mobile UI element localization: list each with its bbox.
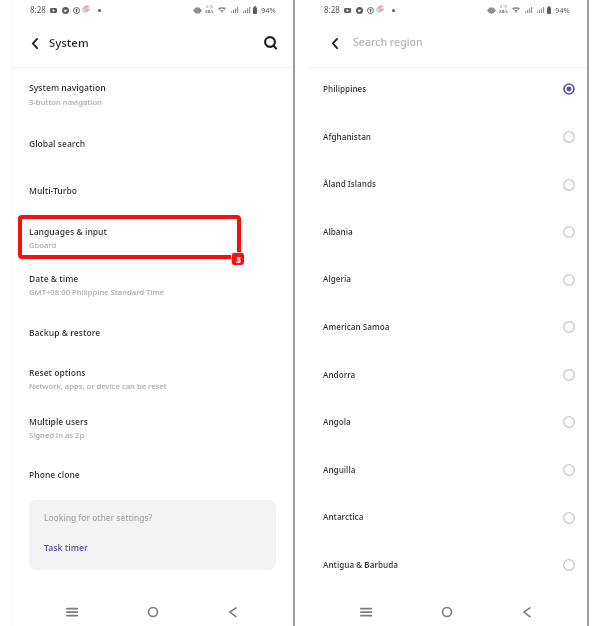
- button[interactable]: [12, 260, 293, 307]
- staticText: GMT+08:00 Philippine Standard Time: [29, 287, 165, 297]
- staticText: 3: [236, 254, 241, 265]
- button[interactable]: Task timer: [44, 542, 88, 554]
- button[interactable]: [12, 450, 293, 497]
- staticText: Signed in as 2p: [29, 430, 85, 440]
- staticText: Andorra: [323, 369, 356, 380]
- staticText: Algeria: [323, 273, 352, 284]
- staticText: KB/s: [499, 9, 508, 14]
- button[interactable]: [306, 249, 587, 297]
- button[interactable]: Home: [435, 600, 459, 624]
- staticText: Languages & input: [29, 226, 107, 238]
- button[interactable]: [306, 392, 587, 440]
- staticText: Anguilla: [323, 464, 356, 475]
- staticText: 8:28: [324, 4, 340, 15]
- button[interactable]: [306, 297, 587, 345]
- staticText: System: [49, 35, 89, 50]
- staticText: Angola: [323, 416, 351, 427]
- button[interactable]: [306, 535, 587, 583]
- staticText: Task timer: [44, 542, 88, 554]
- button[interactable]: [12, 71, 293, 118]
- staticText: Phone clone: [29, 469, 80, 481]
- button[interactable]: [306, 59, 587, 107]
- button[interactable]: Back: [29, 35, 41, 51]
- button[interactable]: [306, 202, 587, 250]
- staticText: Network, apps, or device can be reset: [29, 381, 167, 391]
- staticText: 94%: [555, 5, 570, 15]
- button[interactable]: [12, 355, 293, 402]
- staticText: Looking for other settings?: [44, 512, 153, 523]
- staticText: Global search: [29, 138, 86, 150]
- button[interactable]: [12, 118, 293, 165]
- staticText: Antarctica: [323, 511, 364, 522]
- button[interactable]: [12, 403, 293, 450]
- button[interactable]: Back: [329, 35, 341, 51]
- staticText: 94%: [261, 5, 276, 15]
- staticText: Backup & restore: [29, 327, 101, 339]
- staticText: 0.15: [500, 4, 507, 9]
- staticText: Åland Islands: [323, 178, 377, 189]
- staticText: Afghanistan: [323, 131, 372, 142]
- staticText: American Samoa: [323, 321, 390, 332]
- staticText: 3-button navigation: [29, 97, 102, 107]
- button[interactable]: Recent apps: [354, 600, 378, 624]
- staticText: Multi-Turbo: [29, 185, 78, 197]
- button[interactable]: Home: [141, 600, 165, 624]
- staticText: KB/s: [205, 9, 214, 14]
- button[interactable]: Search: [257, 29, 283, 55]
- staticText: Albania: [323, 226, 353, 237]
- staticText: Multiple users: [29, 416, 88, 428]
- button[interactable]: [306, 344, 587, 392]
- staticText: Date & time: [29, 273, 79, 285]
- button[interactable]: [306, 106, 587, 154]
- staticText: Philippines: [323, 83, 367, 94]
- button[interactable]: Back: [223, 600, 247, 624]
- staticText: Gboard: [29, 240, 57, 250]
- staticText: Reset options: [29, 367, 86, 379]
- button[interactable]: [12, 213, 293, 260]
- button[interactable]: [12, 308, 293, 355]
- button[interactable]: Recent apps: [60, 600, 84, 624]
- button[interactable]: [306, 154, 587, 202]
- staticText: System navigation: [29, 82, 106, 94]
- staticText: Search region: [353, 35, 423, 49]
- staticText: 0.15: [206, 4, 213, 9]
- button[interactable]: [306, 439, 587, 487]
- button[interactable]: [306, 487, 587, 535]
- staticText: Antigua & Barbuda: [323, 559, 398, 570]
- button[interactable]: Back: [517, 600, 541, 624]
- staticText: 8:28: [30, 4, 46, 15]
- button[interactable]: [12, 166, 293, 213]
